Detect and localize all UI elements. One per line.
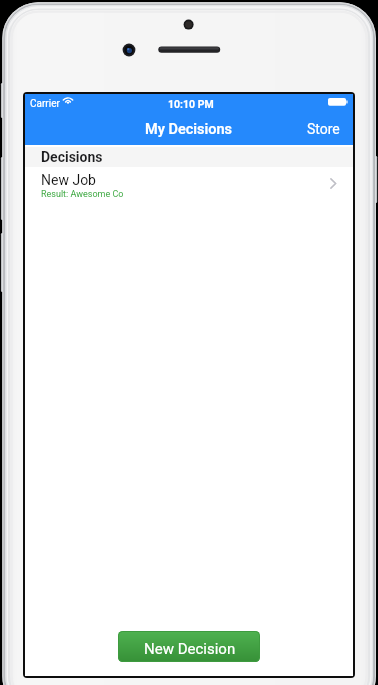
button[interactable]: New Decision [118, 631, 260, 662]
other: Open decision [330, 178, 337, 189]
button[interactable]: Store [294, 116, 353, 142]
staticText: Store [307, 121, 340, 137]
staticText: Decisions [41, 149, 103, 165]
staticText: New Decision [144, 640, 236, 658]
staticText: 10:10 PM [168, 98, 214, 110]
staticText: New Job [41, 172, 96, 188]
staticText: Carrier [30, 98, 60, 110]
staticText: Result: Awesome Co [41, 189, 124, 200]
button[interactable]: New Job [25, 167, 353, 205]
staticText: My Decisions [145, 121, 233, 138]
